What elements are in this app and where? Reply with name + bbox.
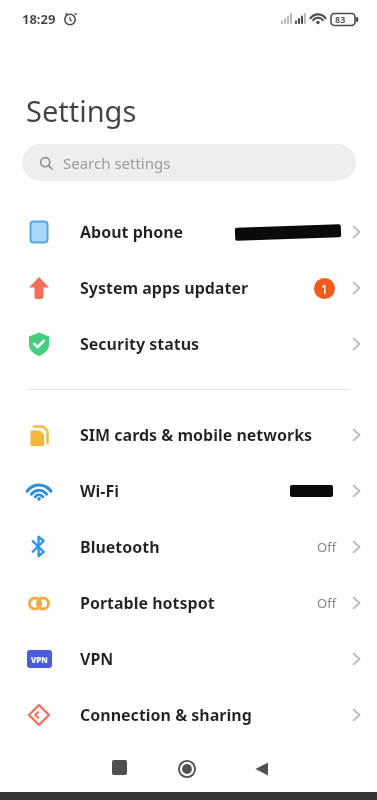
button[interactable]: About phone <box>0 204 377 260</box>
button[interactable]: System apps updater <box>0 260 377 316</box>
staticText: 18:29 <box>22 10 56 28</box>
staticText: VPN <box>80 648 114 670</box>
button[interactable]: Security status <box>0 316 377 372</box>
staticText: Bluetooth <box>80 536 160 558</box>
staticText: 83 <box>335 13 346 25</box>
staticText: SIM cards & mobile networks <box>80 424 313 446</box>
staticText: Wi-Fi <box>80 480 119 502</box>
button[interactable]: VPN <box>0 631 377 687</box>
staticText: Connection & sharing <box>80 704 252 726</box>
button[interactable]: Wi-Fi <box>0 463 377 519</box>
staticText: Security status <box>80 333 200 355</box>
staticText: 1 <box>321 281 328 297</box>
staticText: Search settings <box>63 153 171 173</box>
staticText: Portable hotspot <box>80 592 215 614</box>
button[interactable]: Portable hotspot <box>0 575 377 631</box>
staticText: VPN <box>31 654 48 665</box>
button[interactable]: Bluetooth <box>0 519 377 575</box>
staticText: About phone <box>80 221 184 243</box>
staticText: Off <box>317 538 337 556</box>
button[interactable]: Connection & sharing <box>0 687 377 743</box>
button[interactable] <box>171 753 203 785</box>
button[interactable]: SIM cards & mobile networks <box>0 407 377 463</box>
button[interactable] <box>104 752 135 783</box>
staticText: System apps updater <box>80 277 249 299</box>
button[interactable] <box>247 754 277 784</box>
staticText: Settings <box>26 91 137 130</box>
staticText: Off <box>317 594 337 612</box>
button[interactable]: Search settings <box>22 144 356 181</box>
